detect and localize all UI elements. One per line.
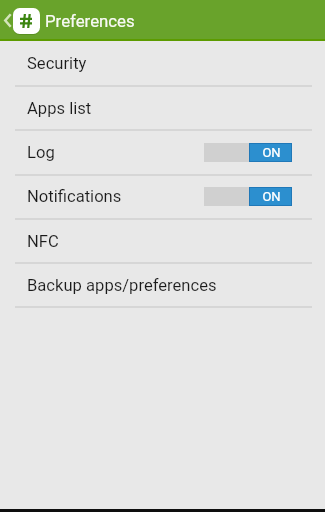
staticText: ON xyxy=(262,189,281,204)
staticText: Notifications xyxy=(27,187,122,206)
staticText: Apps list xyxy=(27,99,92,118)
staticText: Preferences xyxy=(45,11,135,31)
button[interactable]: Backup apps/preferences xyxy=(0,264,325,307)
button[interactable]: Log xyxy=(0,131,325,174)
button[interactable]: Notifications xyxy=(0,175,325,218)
button[interactable]: Navigate up xyxy=(0,0,40,41)
button[interactable]: Toggle, on xyxy=(204,143,292,162)
staticText: Log xyxy=(27,143,55,162)
staticText: ON xyxy=(262,145,281,160)
button[interactable]: Toggle, on xyxy=(204,187,292,206)
staticText: Security xyxy=(27,54,87,73)
button[interactable]: Security xyxy=(0,41,325,85)
staticText: NFC xyxy=(27,232,59,251)
staticText: Backup apps/preferences xyxy=(27,276,217,295)
button[interactable]: NFC xyxy=(0,220,325,263)
button[interactable]: Apps list xyxy=(0,87,325,130)
